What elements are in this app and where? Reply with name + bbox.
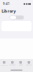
staticText: Listen Now [1,64,8,66]
button[interactable]: Listen Now [0,59,8,68]
staticText: Library [1,8,15,14]
staticText: Radio [19,64,23,66]
button[interactable]: All [9,16,16,19]
button[interactable]: Downloaded [16,16,23,19]
button[interactable]: Radio [16,59,25,68]
staticText: 9:41 [3,2,10,6]
button[interactable]: Featured [0,21,33,31]
button[interactable]: Browse [8,59,16,68]
staticText: Browse [9,64,15,66]
button[interactable]: Library [25,59,33,68]
staticText: Library [26,64,32,66]
